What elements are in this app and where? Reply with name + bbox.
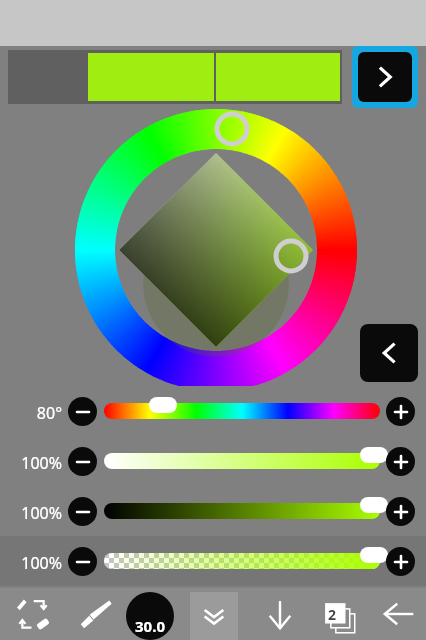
button[interactable]: Decrease (68, 397, 97, 426)
button[interactable]: Collapse (190, 592, 238, 640)
button[interactable]: Adjust (360, 447, 388, 463)
button[interactable]: Layers (310, 588, 366, 640)
button[interactable]: Adjust (360, 497, 388, 513)
button[interactable]: Increase (386, 547, 415, 576)
staticText: 2 (328, 605, 337, 624)
button[interactable]: Swap brush and eraser (4, 588, 62, 640)
staticText: 30.0 (135, 616, 165, 636)
button[interactable]: Increase (386, 447, 415, 476)
button[interactable]: Adjust (360, 547, 388, 563)
staticText: 100% (0, 502, 62, 524)
button[interactable]: Download (252, 588, 308, 640)
button[interactable]: Next (358, 52, 412, 102)
button[interactable]: Brush (66, 588, 124, 640)
button[interactable]: Increase (386, 397, 415, 426)
button[interactable]: Decrease (68, 447, 97, 476)
button[interactable]: Brush size 30.0 (124, 590, 176, 640)
staticText: 80° (0, 402, 62, 424)
button[interactable]: Increase (386, 497, 415, 526)
button[interactable]: Decrease (68, 547, 97, 576)
button[interactable]: Back (372, 588, 426, 640)
button[interactable]: Decrease (68, 497, 97, 526)
staticText: 100% (0, 552, 62, 574)
button[interactable]: Back (360, 324, 418, 382)
button[interactable]: Adjust (149, 397, 177, 413)
staticText: 100% (0, 452, 62, 474)
